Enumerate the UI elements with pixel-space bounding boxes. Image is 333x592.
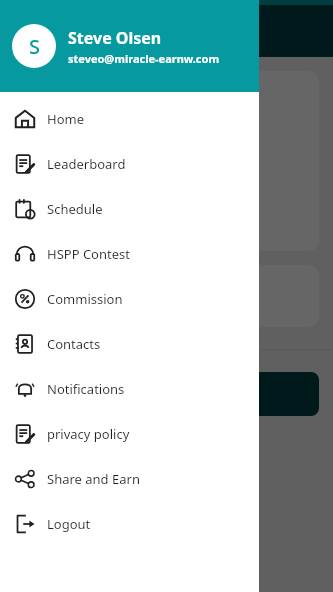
staticText: Notifications <box>47 380 125 398</box>
staticText: S <box>29 33 40 60</box>
staticText: Commission <box>47 290 123 308</box>
button[interactable]: Notifications <box>0 366 259 411</box>
staticText: HSPP Contest <box>47 245 130 263</box>
button[interactable]: Commission <box>0 276 259 321</box>
button[interactable]: Home <box>0 96 259 141</box>
button[interactable]: Logout <box>0 501 259 546</box>
button[interactable]: Leaderboard <box>0 141 259 186</box>
button[interactable]: HSPP Contest <box>0 231 259 276</box>
staticText: Leaderboard <box>47 155 126 173</box>
staticText: Share and Earn <box>47 470 140 488</box>
button[interactable]: Contacts <box>0 321 259 366</box>
staticText: steveo@miracle-earnw.com <box>68 51 220 66</box>
staticText: Steve Olsen <box>68 27 162 49</box>
button[interactable]: Share and Earn <box>0 456 259 501</box>
staticText: Schedule <box>47 200 103 218</box>
staticText: Contacts <box>47 335 101 353</box>
staticText: privacy policy <box>47 425 130 443</box>
staticText: Logout <box>47 515 91 533</box>
button[interactable]: Schedule <box>0 186 259 231</box>
staticText: Home <box>47 110 84 128</box>
button[interactable]: privacy policy <box>0 411 259 456</box>
staticText: Balance <box>14 434 70 454</box>
